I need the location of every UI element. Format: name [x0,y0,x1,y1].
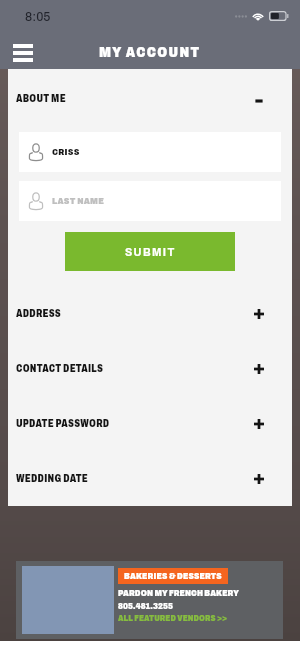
staticText: CONTACT DETAILS [16,363,104,374]
button[interactable]: CRISS [19,132,281,172]
button[interactable]: LAST NAME [19,181,281,221]
button[interactable]: WEDDING DATE [16,449,284,504]
staticText: 8:05 [25,10,51,24]
staticText: SUBMIT [125,246,176,259]
staticText: MY ACCOUNT [99,44,201,60]
staticText: UPDATE PASSWORD [16,418,110,429]
button[interactable]: CONTACT DETAILS [16,339,284,394]
staticText: WEDDING DATE [16,473,88,484]
staticText: BAKERIES & DESSERTS [124,571,222,581]
staticText: 805.481.3255 [118,601,173,611]
staticText: CRISS [52,147,80,157]
staticText: ABOUT ME [16,93,66,104]
staticText: ALL FEATURED VENDORS >> [118,614,228,623]
button[interactable]: BAKERIES & DESSERTS [16,561,283,639]
button[interactable]: UPDATE PASSWORD [16,394,284,449]
button[interactable]: Open navigation menu [3,30,43,69]
staticText: ADDRESS [16,308,61,319]
staticText: LAST NAME [52,196,105,206]
button[interactable]: ABOUT ME [16,69,284,132]
button[interactable]: SUBMIT [65,232,235,271]
staticText: PARDON MY FRENCH BAKERY [118,588,239,598]
button[interactable]: ADDRESS [16,284,284,339]
